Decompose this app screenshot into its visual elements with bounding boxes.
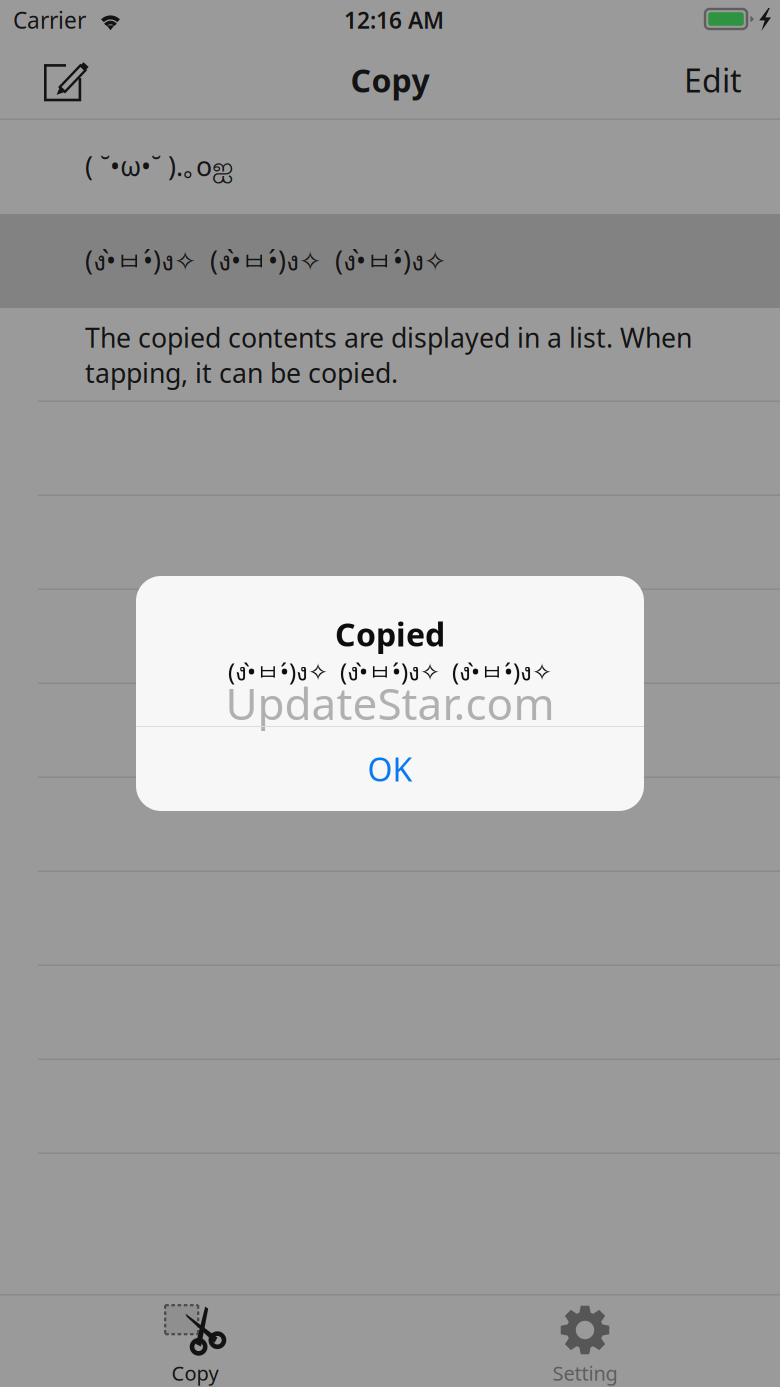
staticText: The copied contents are displayed in a l… xyxy=(85,320,692,390)
button[interactable]: Copy xyxy=(0,1294,390,1387)
button[interactable]: (ง•̀ㅂ•́)ง✧ (ง•̀ㅂ•́)ง✧ (ง•̀ㅂ•́)ง✧ xyxy=(0,214,780,308)
staticText: Carrier xyxy=(13,5,86,35)
button[interactable]: The copied contents are displayed in a l… xyxy=(0,308,780,402)
staticText: UpdateStar.com xyxy=(225,674,554,732)
button[interactable]: Compose xyxy=(0,40,110,120)
staticText: Edit xyxy=(684,59,742,101)
button[interactable]: Setting xyxy=(390,1294,780,1387)
staticText: Copy xyxy=(350,59,429,101)
staticText: 12:16 AM xyxy=(344,5,444,35)
button[interactable]: OK xyxy=(136,727,644,811)
staticText: OK xyxy=(367,748,412,790)
button[interactable]: Edit xyxy=(664,40,780,120)
staticText: (ง•̀ㅂ•́)ง✧ (ง•̀ㅂ•́)ง✧ (ง•̀ㅂ•́)ง✧ xyxy=(85,240,446,282)
staticText: (ง•̀ㅂ•́)ง✧ (ง•̀ㅂ•́)ง✧ (ง•̀ㅂ•́)ง✧ xyxy=(228,653,552,691)
staticText: ( ˘•ω•˘ ).｡oஐ xyxy=(85,148,233,186)
staticText: Copy xyxy=(171,1360,218,1386)
staticText: Copied xyxy=(335,613,445,655)
button[interactable]: ( ˘•ω•˘ ).｡oஐ xyxy=(0,120,780,214)
staticText: Setting xyxy=(552,1360,617,1386)
